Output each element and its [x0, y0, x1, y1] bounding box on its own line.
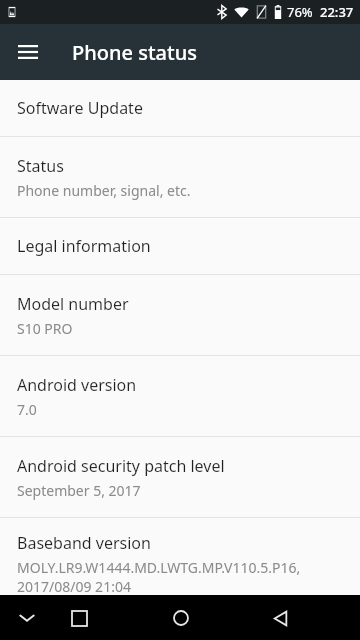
- staticText: Phone status: [72, 39, 197, 66]
- button[interactable]: Open navigation drawer: [8, 28, 48, 76]
- button[interactable]: Back: [259, 597, 301, 639]
- staticText: MOLY.LR9.W1444.MD.LWTG.MP.V110.5.P16, 20…: [17, 558, 301, 595]
- staticText: Software Update: [17, 97, 143, 119]
- button[interactable]: Status: [0, 137, 360, 217]
- staticText: Model number: [17, 293, 129, 315]
- staticText: Android security patch level: [17, 455, 225, 477]
- staticText: 22:37: [320, 3, 354, 21]
- staticText: September 5, 2017: [17, 481, 141, 500]
- staticText: Status: [17, 155, 64, 177]
- staticText: Legal information: [17, 235, 151, 257]
- button[interactable]: Legal information: [0, 218, 360, 274]
- staticText: 76%: [287, 3, 313, 21]
- button[interactable]: Recent apps: [58, 597, 100, 639]
- staticText: Baseband version: [17, 532, 151, 554]
- button[interactable]: Hide keyboard: [6, 597, 48, 639]
- button[interactable]: Baseband version: [0, 518, 360, 595]
- button[interactable]: Android version: [0, 356, 360, 436]
- staticText: Phone number, signal, etc.: [17, 181, 191, 200]
- button[interactable]: Software Update: [0, 80, 360, 136]
- staticText: S10 PRO: [17, 319, 73, 338]
- button[interactable]: Home: [160, 597, 202, 639]
- button[interactable]: Model number: [0, 275, 360, 355]
- staticText: 7.0: [17, 400, 37, 419]
- staticText: Android version: [17, 374, 137, 396]
- button[interactable]: Android security patch level: [0, 437, 360, 517]
